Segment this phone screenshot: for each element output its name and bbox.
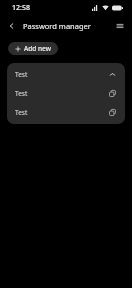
button[interactable]: Copy password <box>107 107 118 118</box>
button[interactable]: Test <box>7 84 125 103</box>
staticText: 12:58 <box>12 3 30 13</box>
button[interactable]: Copy password <box>107 88 118 99</box>
staticText: Password manager <box>23 21 112 31</box>
button[interactable]: Collapse <box>107 69 118 80</box>
staticText: Test <box>15 70 107 79</box>
staticText: Test <box>15 89 107 98</box>
button[interactable]: Add new <box>8 42 58 55</box>
staticText: Add new <box>24 44 51 53</box>
button[interactable]: Test <box>7 65 125 84</box>
button[interactable]: More options <box>112 18 128 34</box>
staticText: Test <box>15 108 107 117</box>
button[interactable]: Back <box>4 18 20 34</box>
button[interactable]: Test <box>7 103 125 122</box>
